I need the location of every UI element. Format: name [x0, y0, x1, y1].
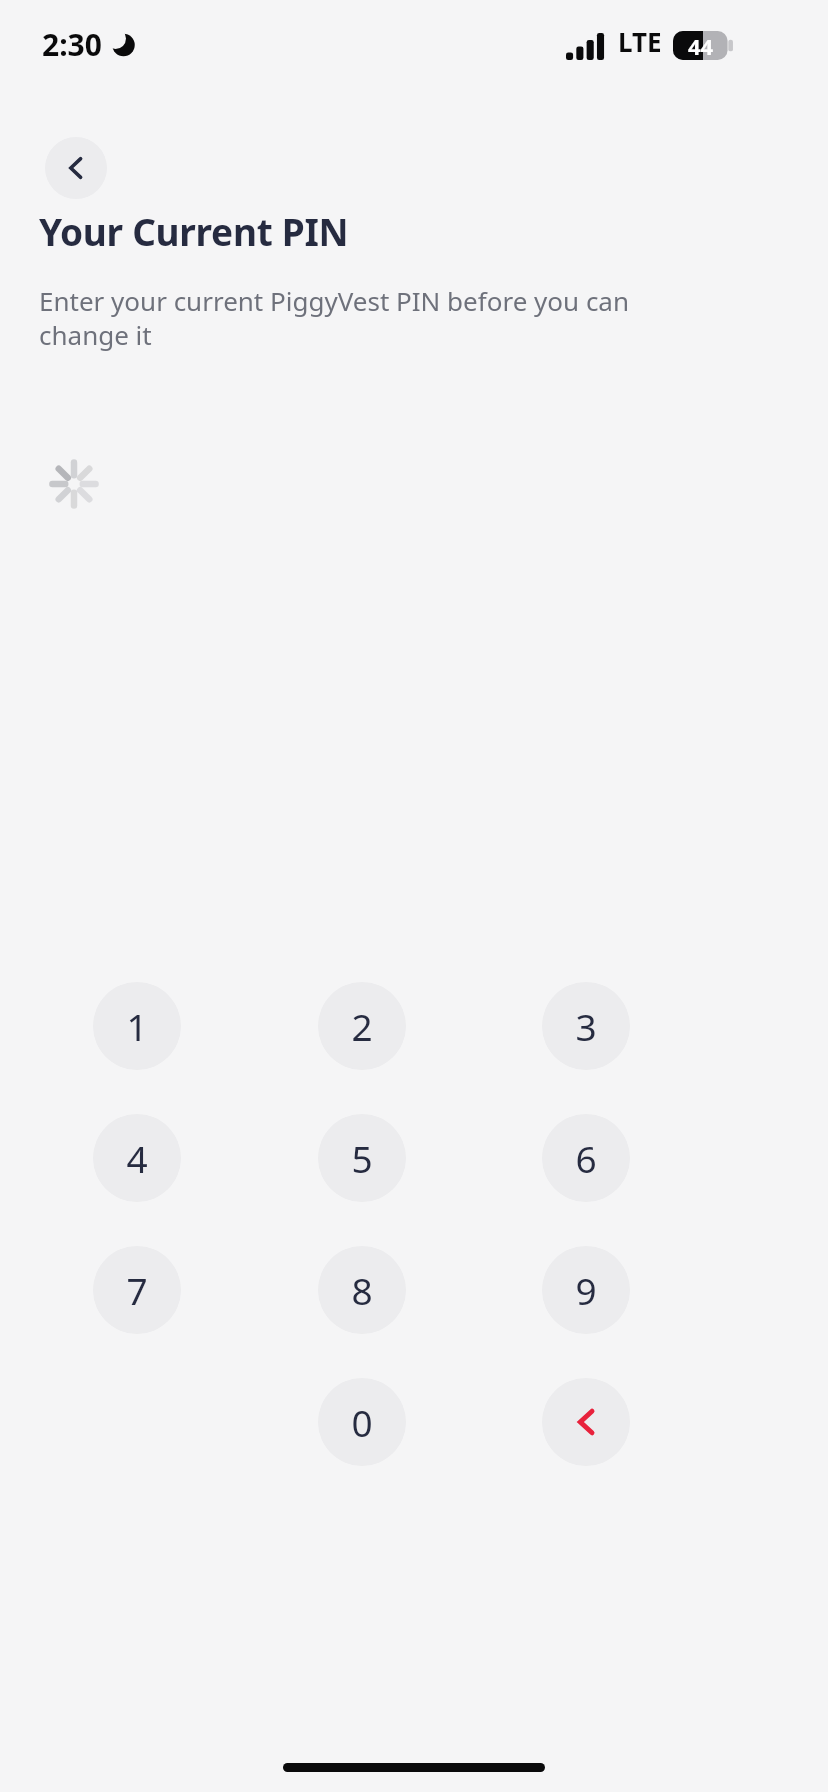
button[interactable]: Back [45, 137, 107, 199]
staticText: 4 [126, 1133, 148, 1183]
button[interactable]: 0 [318, 1378, 406, 1466]
staticText: 2:30 [42, 24, 102, 65]
staticText: 3 [575, 1001, 597, 1051]
button[interactable]: 4 [93, 1114, 181, 1202]
button[interactable]: 5 [318, 1114, 406, 1202]
button[interactable]: Delete [542, 1378, 630, 1466]
staticText: 1 [126, 1001, 148, 1051]
staticText: 9 [575, 1265, 597, 1315]
button[interactable]: 2 [318, 982, 406, 1070]
button[interactable]: 6 [542, 1114, 630, 1202]
staticText: Your Current PIN [39, 206, 349, 256]
staticText: 44 [688, 31, 714, 60]
staticText: 5 [351, 1133, 373, 1183]
button[interactable]: 3 [542, 982, 630, 1070]
staticText: 0 [351, 1397, 373, 1447]
staticText: 2 [351, 1001, 373, 1051]
staticText: LTE [618, 24, 662, 59]
staticText: 8 [351, 1265, 373, 1315]
staticText: Enter your current PiggyVest PIN before … [39, 283, 643, 353]
button[interactable]: 1 [93, 982, 181, 1070]
button[interactable]: 7 [93, 1246, 181, 1334]
button[interactable]: 9 [542, 1246, 630, 1334]
button[interactable]: 8 [318, 1246, 406, 1334]
staticText: 7 [126, 1265, 148, 1315]
staticText: 6 [575, 1133, 597, 1183]
